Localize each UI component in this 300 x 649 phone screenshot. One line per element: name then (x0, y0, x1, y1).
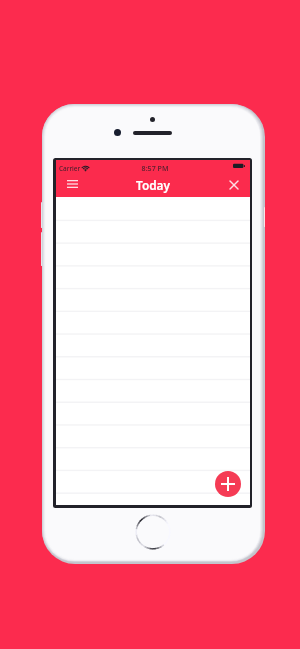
staticText: Today (56, 177, 250, 193)
button[interactable]: Add task (215, 471, 241, 497)
button[interactable] (56, 450, 250, 473)
button[interactable]: Close (222, 173, 246, 197)
button[interactable]: Open navigation menu (60, 172, 84, 196)
staticText: 8:57 PM (58, 163, 252, 173)
button[interactable] (56, 473, 250, 496)
staticText: Carrier (59, 164, 81, 173)
